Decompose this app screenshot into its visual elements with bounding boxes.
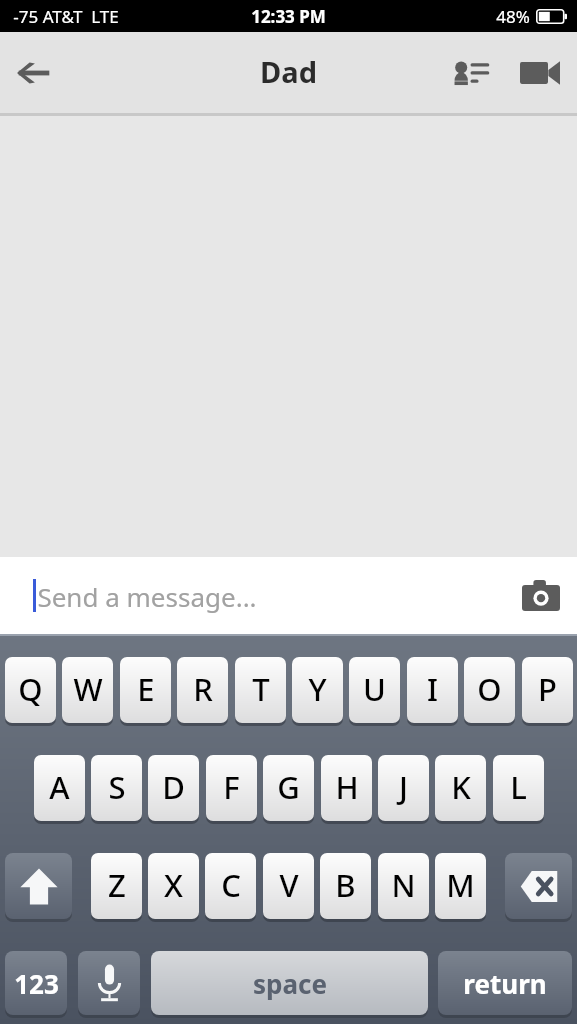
staticText: return <box>463 966 547 1001</box>
button[interactable]: Q <box>5 657 56 726</box>
staticText: D <box>162 766 185 808</box>
button[interactable]: Video call <box>503 32 577 113</box>
staticText: P <box>538 668 557 710</box>
button[interactable]: O <box>464 657 515 726</box>
staticText: H <box>335 766 359 808</box>
staticText: -75 AT&T LTE <box>13 5 119 28</box>
staticText: T <box>252 668 270 710</box>
staticText: A <box>49 766 70 808</box>
button[interactable]: V <box>263 853 314 922</box>
button[interactable]: S <box>91 755 142 824</box>
button[interactable]: Shift <box>5 853 72 922</box>
button[interactable]: M <box>435 853 486 922</box>
staticText: space <box>253 966 327 1001</box>
button[interactable]: U <box>349 657 400 726</box>
button[interactable]: T <box>235 657 286 726</box>
staticText: U <box>363 668 386 710</box>
button[interactable]: J <box>378 755 429 824</box>
staticText: G <box>277 766 300 808</box>
button[interactable]: Contact details <box>441 32 503 113</box>
button[interactable]: R <box>177 657 228 726</box>
staticText: 48% <box>496 5 530 28</box>
staticText: W <box>73 668 103 710</box>
staticText: 123 <box>14 966 59 1001</box>
staticText: K <box>451 766 471 808</box>
staticText: M <box>446 864 475 906</box>
button[interactable]: Take photo <box>505 557 577 634</box>
button[interactable]: 123 <box>5 951 67 1018</box>
button[interactable]: Voice input <box>78 951 140 1018</box>
button[interactable]: space <box>151 951 428 1018</box>
button[interactable]: Z <box>91 853 142 922</box>
staticText: J <box>399 766 408 808</box>
staticText: B <box>335 864 356 906</box>
button[interactable]: Y <box>292 657 343 726</box>
button[interactable]: N <box>378 853 429 922</box>
button[interactable]: I <box>407 657 458 726</box>
staticText: R <box>193 668 213 710</box>
staticText: Send a message... <box>37 579 257 614</box>
button[interactable]: E <box>120 657 171 726</box>
staticText: S <box>108 766 126 808</box>
staticText: 12:33 PM <box>251 5 326 28</box>
staticText: V <box>279 864 299 906</box>
button[interactable]: return <box>438 951 572 1018</box>
button[interactable]: W <box>62 657 113 726</box>
button[interactable]: Send a message... <box>0 557 577 634</box>
button[interactable]: C <box>205 853 256 922</box>
staticText: F <box>223 766 240 808</box>
button[interactable]: H <box>321 755 372 824</box>
button[interactable]: B <box>320 853 371 922</box>
staticText: L <box>510 766 527 808</box>
staticText: Q <box>18 668 43 710</box>
button[interactable]: A <box>34 755 85 824</box>
button[interactable]: L <box>493 755 544 824</box>
staticText: N <box>391 864 416 906</box>
button[interactable]: K <box>435 755 486 824</box>
staticText: X <box>164 864 183 906</box>
staticText: C <box>221 864 241 906</box>
staticText: Y <box>308 668 327 710</box>
button[interactable]: Backspace <box>505 853 572 922</box>
button[interactable]: G <box>263 755 314 824</box>
staticText: Dad <box>260 52 317 91</box>
button[interactable]: P <box>522 657 573 726</box>
staticText: E <box>137 668 155 710</box>
staticText: I <box>427 668 438 710</box>
staticText: Z <box>108 864 126 906</box>
button[interactable]: Back <box>0 32 66 113</box>
button[interactable]: F <box>206 755 257 824</box>
button[interactable]: X <box>148 853 199 922</box>
button[interactable]: D <box>148 755 199 824</box>
staticText: O <box>477 668 502 710</box>
